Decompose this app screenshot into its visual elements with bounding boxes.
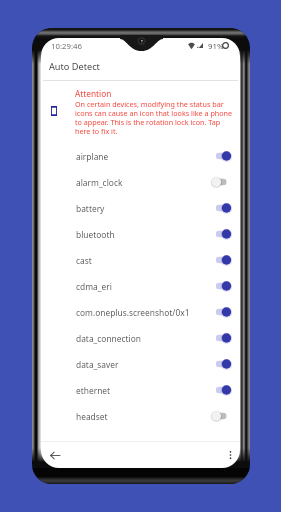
button[interactable]: cast (41, 247, 240, 273)
button[interactable]: data_connection (41, 325, 240, 351)
button[interactable]: Back (46, 446, 64, 464)
button[interactable]: ethernet (41, 377, 240, 403)
staticText: alarm_clock (76, 177, 123, 188)
staticText: com.oneplus.screenshot/0x1 (76, 307, 190, 318)
button[interactable]: alarm_clock (41, 169, 240, 195)
button[interactable]: battery (41, 195, 240, 221)
staticText: 91% (208, 41, 224, 52)
staticText: airplane (76, 151, 109, 162)
staticText: data_saver (76, 359, 119, 370)
button[interactable]: com.oneplus.screenshot/0x1 (41, 299, 240, 325)
staticText: ethernet (76, 385, 111, 396)
button[interactable]: More options (221, 446, 239, 464)
button[interactable]: headset (41, 403, 240, 429)
staticText: 10:29:46 (51, 41, 82, 52)
button[interactable]: cdma_eri (41, 273, 240, 299)
button[interactable]: bluetooth (41, 221, 240, 247)
staticText: cdma_eri (76, 281, 112, 292)
staticText: bluetooth (76, 229, 115, 240)
staticText: cast (76, 255, 92, 266)
staticText: Attention (75, 88, 112, 99)
staticText: battery (76, 203, 105, 214)
staticText: data_connection (76, 333, 142, 344)
button[interactable]: data_saver (41, 351, 240, 377)
staticText: headset (76, 411, 108, 422)
staticText: Auto Detect (49, 60, 100, 73)
button[interactable]: airplane (41, 143, 240, 169)
staticText: On certain devices, modifying the status… (75, 99, 234, 136)
button[interactable]: Attention (41, 83, 240, 135)
